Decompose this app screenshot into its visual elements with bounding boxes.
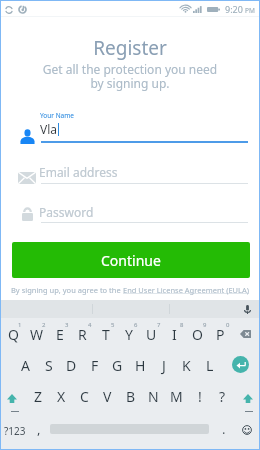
button[interactable]: Email address bbox=[39, 164, 246, 184]
button[interactable]: ? bbox=[211, 380, 234, 411]
staticText: A bbox=[21, 356, 30, 375]
staticText: 7 bbox=[157, 321, 161, 329]
button[interactable]: Voice input bbox=[235, 300, 259, 318]
button[interactable]: Continue bbox=[12, 242, 250, 278]
staticText: 5 bbox=[111, 321, 115, 329]
staticText: ?123 bbox=[4, 424, 26, 438]
button[interactable]: Shift bbox=[234, 380, 259, 411]
staticText: U bbox=[146, 325, 157, 344]
button[interactable]: Q bbox=[1, 318, 25, 349]
button[interactable]: H bbox=[129, 349, 152, 380]
button[interactable]: M bbox=[165, 380, 188, 411]
staticText: ? bbox=[219, 387, 226, 406]
button[interactable]: R bbox=[71, 318, 94, 349]
staticText: 1 bbox=[18, 321, 22, 329]
staticText: I bbox=[172, 325, 177, 344]
button[interactable]: P bbox=[209, 318, 232, 349]
button[interactable]: B bbox=[119, 380, 142, 411]
staticText: 9:20 bbox=[225, 3, 243, 15]
staticText: C bbox=[80, 387, 89, 406]
staticText: PM bbox=[245, 6, 255, 15]
staticText: X bbox=[57, 387, 66, 406]
staticText: . bbox=[222, 420, 226, 438]
button[interactable]: ?123 bbox=[1, 411, 29, 449]
staticText: Continue bbox=[101, 251, 161, 270]
button[interactable]: V bbox=[96, 380, 119, 411]
staticText: Your Name bbox=[40, 111, 75, 120]
staticText: H bbox=[135, 356, 146, 375]
staticText: Get all the protection you need by signi… bbox=[1, 61, 259, 92]
staticText: 0 bbox=[226, 321, 230, 329]
button[interactable]: A bbox=[14, 349, 37, 380]
button[interactable]: C bbox=[73, 380, 96, 411]
button[interactable]: Enter bbox=[221, 349, 259, 380]
button[interactable]: N bbox=[142, 380, 165, 411]
staticText: Password bbox=[39, 204, 94, 220]
button[interactable]: Z bbox=[27, 380, 50, 411]
staticText: 4 bbox=[88, 321, 92, 329]
button[interactable]: O bbox=[186, 318, 209, 349]
button[interactable]: . bbox=[209, 411, 234, 449]
staticText: O bbox=[192, 325, 203, 344]
staticText: Email address bbox=[39, 164, 118, 180]
staticText: Vla bbox=[40, 121, 58, 137]
staticText: B bbox=[126, 387, 136, 406]
staticText: R bbox=[78, 325, 87, 344]
button[interactable]: U bbox=[140, 318, 163, 349]
staticText: Y bbox=[125, 325, 133, 344]
staticText: G bbox=[112, 356, 123, 375]
staticText: Q bbox=[8, 325, 19, 344]
staticText: N bbox=[148, 387, 159, 406]
staticText: T bbox=[102, 325, 110, 344]
staticText: Z bbox=[34, 387, 43, 406]
button[interactable]: ! bbox=[188, 380, 211, 411]
button[interactable]: End User License Agreement (EULA) bbox=[123, 285, 250, 295]
button[interactable]: K bbox=[175, 349, 198, 380]
button[interactable]: E bbox=[48, 318, 71, 349]
staticText: E bbox=[56, 325, 64, 344]
button[interactable]: Password bbox=[39, 204, 246, 224]
staticText: W bbox=[30, 325, 44, 344]
staticText: 3 bbox=[65, 321, 69, 329]
button[interactable]: D bbox=[60, 349, 83, 380]
staticText: J bbox=[162, 356, 166, 375]
button[interactable]: Shift bbox=[1, 380, 27, 411]
button[interactable]: Y bbox=[117, 318, 140, 349]
staticText: By signing up, you agree to the bbox=[11, 285, 123, 295]
button[interactable]: J bbox=[152, 349, 175, 380]
staticText: F bbox=[91, 356, 99, 375]
button[interactable]: , bbox=[29, 411, 50, 449]
button[interactable]: X bbox=[50, 380, 73, 411]
staticText: 9 bbox=[203, 321, 207, 329]
button[interactable]: Backspace bbox=[232, 318, 259, 349]
staticText: D bbox=[66, 356, 77, 375]
button[interactable]: S bbox=[37, 349, 60, 380]
button[interactable]: F bbox=[83, 349, 106, 380]
staticText: ! bbox=[198, 387, 202, 406]
staticText: Register bbox=[1, 35, 259, 61]
button[interactable]: G bbox=[106, 349, 129, 380]
staticText: M bbox=[170, 387, 183, 406]
button[interactable]: W bbox=[25, 318, 48, 349]
button[interactable]: T bbox=[94, 318, 117, 349]
staticText: 2 bbox=[42, 321, 46, 329]
staticText: V bbox=[103, 387, 112, 406]
staticText: , bbox=[37, 420, 41, 438]
staticText: S bbox=[45, 356, 53, 375]
staticText: 8 bbox=[180, 321, 184, 329]
button[interactable]: Emoji bbox=[234, 411, 259, 449]
button[interactable]: I bbox=[163, 318, 186, 349]
staticText: L bbox=[206, 356, 214, 375]
staticText: K bbox=[182, 356, 191, 375]
button[interactable]: Space bbox=[50, 411, 209, 449]
staticText: P bbox=[216, 325, 225, 344]
staticText: 6 bbox=[134, 321, 138, 329]
button[interactable]: L bbox=[198, 349, 221, 380]
